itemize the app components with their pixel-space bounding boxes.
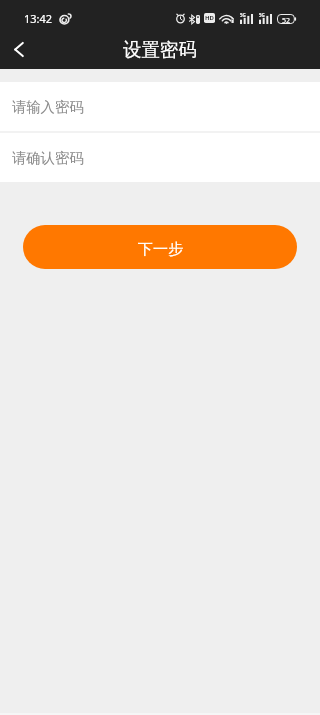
staticText: 设置密码 <box>123 38 197 61</box>
staticText: 13:42 <box>24 11 53 26</box>
staticText: 5G <box>259 12 265 18</box>
button[interactable]: Back <box>0 36 37 69</box>
button[interactable]: 下一步 <box>23 225 297 269</box>
button[interactable]: 请输入密码 <box>0 82 320 131</box>
staticText: 52 <box>282 16 291 26</box>
button[interactable]: 请确认密码 <box>0 133 320 182</box>
staticText: 请确认密码 <box>12 149 84 167</box>
staticText: HD <box>205 14 214 22</box>
staticText: 下一步 <box>138 240 183 259</box>
staticText: 请输入密码 <box>12 98 84 116</box>
staticText: 5G <box>240 12 246 18</box>
